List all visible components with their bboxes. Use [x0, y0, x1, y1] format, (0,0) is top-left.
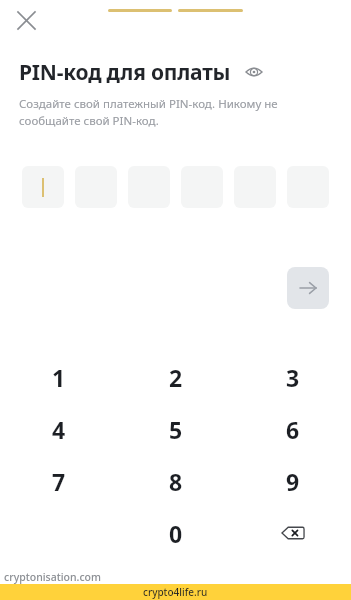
staticText: 1 [52, 362, 66, 393]
button[interactable]: 1 [0, 351, 117, 403]
staticText: 5 [169, 414, 183, 445]
staticText: Создайте свой платежный PIN-код. Никому … [19, 96, 278, 128]
button[interactable]: 5 [117, 403, 234, 455]
button[interactable]: 7 [0, 455, 117, 507]
button[interactable]: 0 [117, 507, 234, 559]
button[interactable]: Show PIN [239, 57, 269, 87]
staticText: cryptonisation.com [4, 570, 101, 584]
button[interactable]: 3 [234, 351, 351, 403]
staticText: 9 [286, 466, 300, 497]
button[interactable]: Backspace [234, 507, 351, 559]
staticText: 8 [169, 466, 183, 497]
button[interactable]: Close [6, 0, 46, 40]
staticText: 0 [169, 518, 183, 549]
staticText: 6 [286, 414, 300, 445]
staticText: 3 [286, 362, 300, 393]
button[interactable]: 2 [117, 351, 234, 403]
button[interactable]: 6 [234, 403, 351, 455]
button[interactable]: 9 [234, 455, 351, 507]
staticText: 4 [52, 414, 66, 445]
staticText: PIN-код для оплаты [19, 58, 231, 87]
staticText: 7 [52, 466, 66, 497]
button[interactable]: 4 [0, 403, 117, 455]
button[interactable] [22, 166, 64, 208]
button[interactable]: Continue [287, 267, 329, 309]
staticText: 2 [169, 362, 183, 393]
staticText: crypto4life.ru [143, 585, 208, 599]
button[interactable]: 8 [117, 455, 234, 507]
